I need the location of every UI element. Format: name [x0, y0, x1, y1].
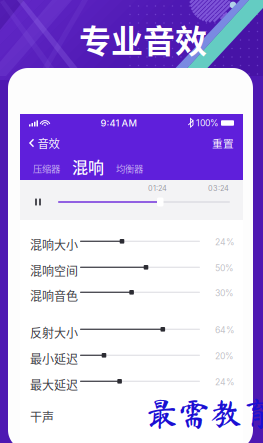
staticText: 01:24: [148, 184, 167, 193]
staticText: 压缩器: [33, 162, 60, 175]
staticText: 混响: [72, 155, 104, 178]
button[interactable]: 最小延迟: [20, 347, 243, 363]
staticText: 最需教育: [146, 397, 263, 429]
staticText: 均衡器: [116, 162, 143, 175]
staticText: 64%: [215, 325, 235, 335]
staticText: 50%: [215, 263, 234, 273]
staticText: 最大延迟: [30, 376, 78, 393]
staticText: 干声: [30, 408, 54, 425]
staticText: 30%: [215, 288, 234, 298]
staticText: 03:24: [208, 184, 229, 193]
button[interactable]: 重置: [203, 132, 243, 154]
staticText: 最小延迟: [30, 350, 78, 367]
button[interactable]: 混响音色: [20, 284, 243, 300]
staticText: 24%: [215, 237, 235, 247]
staticText: 反射大小: [30, 324, 78, 341]
button[interactable]: 混响: [65, 155, 111, 179]
staticText: 混响空间: [30, 262, 78, 279]
staticText: 24%: [215, 377, 235, 387]
button[interactable]: 混响大小: [20, 233, 243, 249]
button[interactable]: 均衡器: [111, 162, 148, 179]
button[interactable]: 最大延迟: [20, 373, 243, 389]
staticText: 20%: [215, 351, 234, 361]
button[interactable]: 音效: [20, 132, 68, 154]
staticText: 重置: [212, 135, 234, 151]
button[interactable]: Pause: [29, 193, 47, 211]
staticText: 9:41 AM: [100, 117, 137, 129]
staticText: 混响音色: [30, 287, 78, 304]
staticText: 混响大小: [30, 236, 78, 253]
button[interactable]: 混响空间: [20, 259, 243, 275]
staticText: 音效: [37, 135, 59, 151]
button[interactable]: 反射大小: [20, 321, 243, 337]
button[interactable]: 压缩器: [28, 162, 65, 179]
staticText: 100%: [196, 118, 219, 128]
button[interactable]: 干声: [20, 405, 243, 421]
staticText: 专业音效: [79, 16, 207, 62]
